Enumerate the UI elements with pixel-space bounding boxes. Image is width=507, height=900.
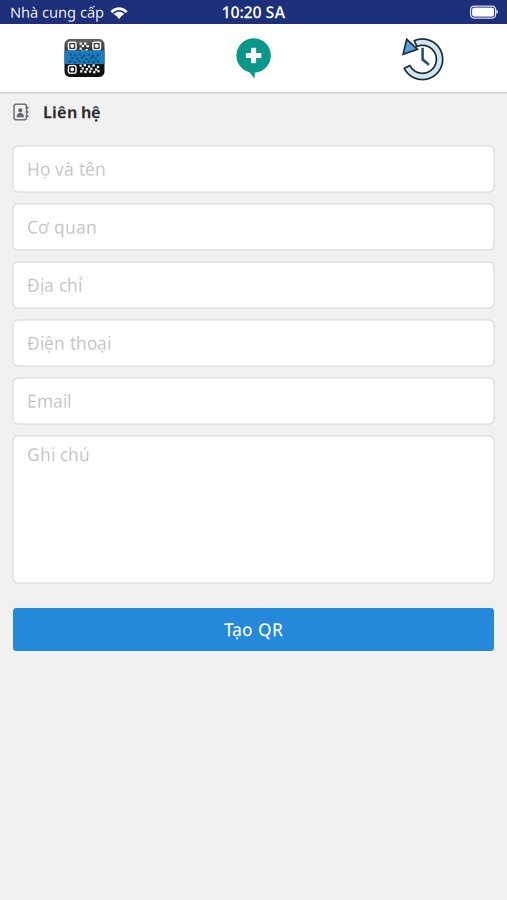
button[interactable]: Tạo QR	[13, 608, 494, 651]
staticText: Địa chỉ	[27, 273, 82, 296]
button[interactable]: Ghi chú	[13, 436, 494, 583]
button[interactable]: Lịch sử	[338, 24, 507, 92]
staticText: Nhà cung cấp	[10, 2, 104, 22]
staticText: Điện thoại	[27, 331, 111, 354]
button[interactable]: Quét mã QR	[0, 24, 169, 92]
staticText: Cơ quan	[27, 215, 97, 238]
staticText: Họ và tên	[27, 157, 106, 180]
button[interactable]: Địa chỉ	[13, 262, 494, 308]
button[interactable]: Điện thoại	[13, 320, 494, 366]
button[interactable]: Cơ quan	[13, 204, 494, 250]
staticText: Ghi chú	[27, 443, 90, 466]
button[interactable]: Tạo mã QR mới	[169, 24, 338, 92]
staticText: Tạo QR	[224, 618, 283, 641]
button[interactable]: Họ và tên	[13, 146, 494, 192]
staticText: Liên hệ	[43, 101, 101, 123]
button[interactable]: Email	[13, 378, 494, 424]
staticText: Email	[27, 389, 71, 412]
staticText: 10:20 SA	[221, 1, 285, 23]
